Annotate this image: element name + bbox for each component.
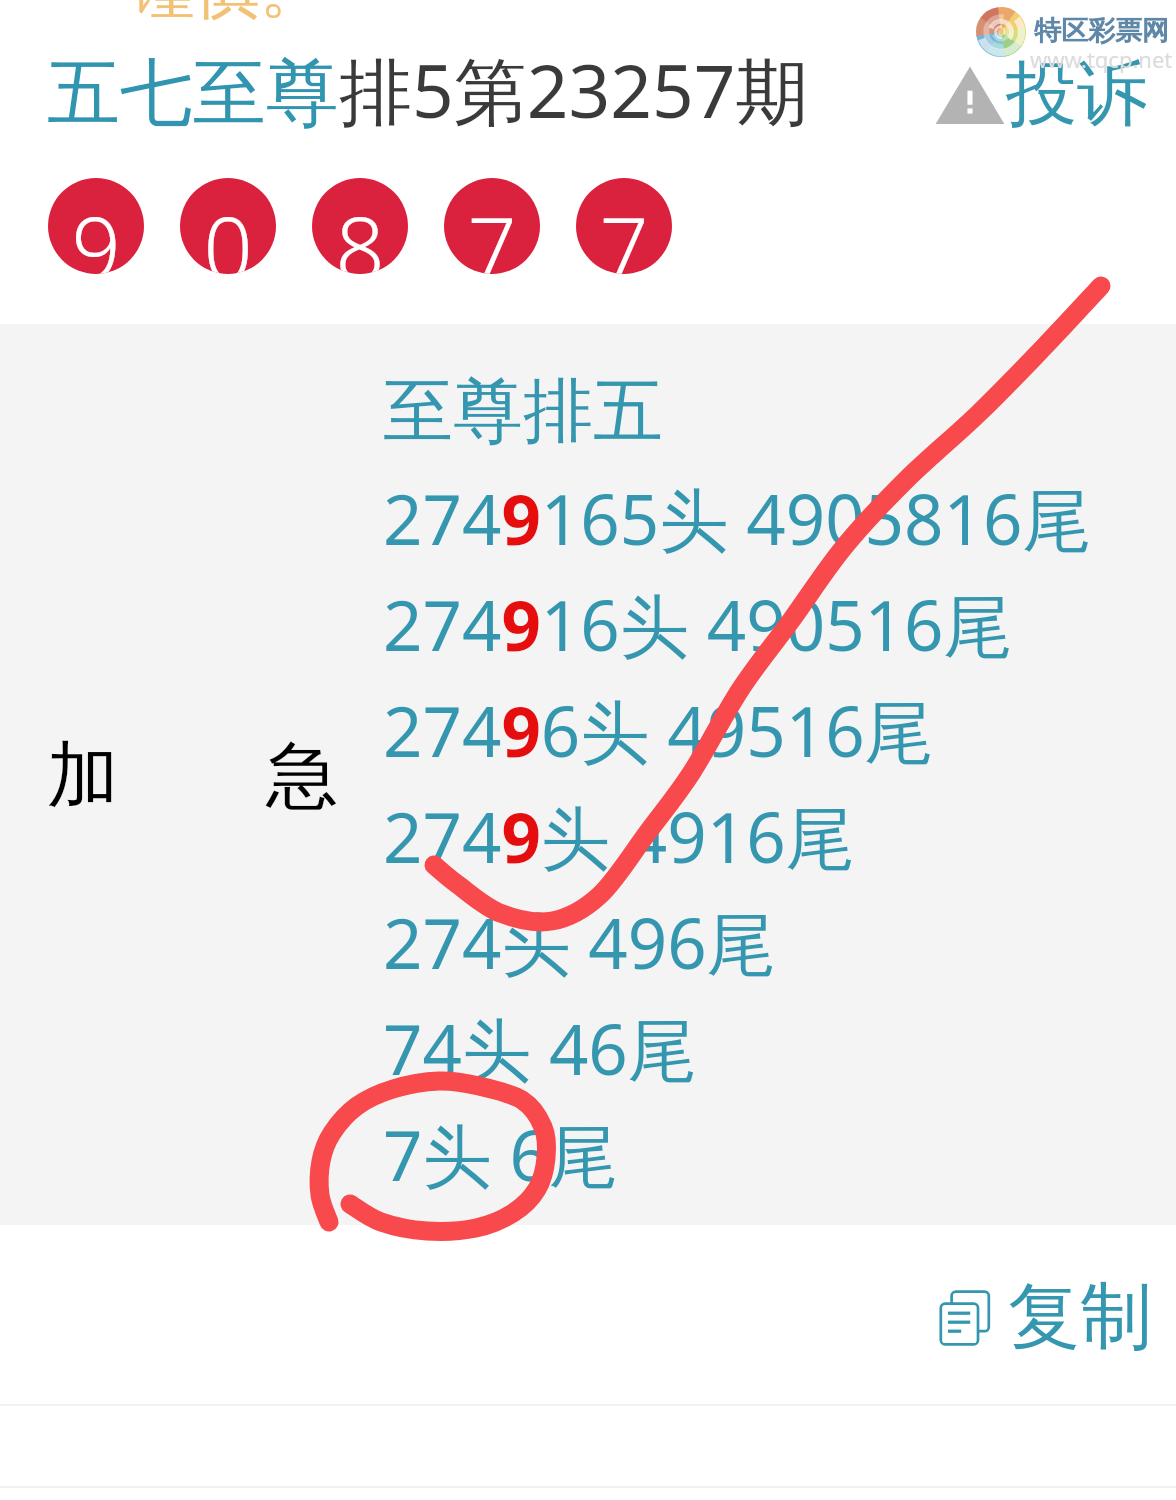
staticText: 9: [48, 188, 144, 274]
button[interactable]: 9: [48, 178, 144, 274]
staticText: 谨慎。: [132, 0, 324, 30]
other: Report a problem: [940, 72, 1000, 124]
button[interactable]: Copy: [934, 1272, 1154, 1363]
staticText: 特区彩票网: [1034, 14, 1169, 48]
staticText: 0: [180, 188, 276, 274]
staticText: 274头 496尾: [383, 895, 776, 989]
staticText: 74头 46尾: [383, 1001, 697, 1095]
staticText: 急: [266, 731, 338, 822]
staticText: 7: [576, 188, 672, 274]
staticText: 274916头 490516尾: [383, 577, 1013, 671]
staticText: 加: [47, 731, 119, 822]
staticText: 2749165头 4905816尾: [383, 471, 1092, 565]
button[interactable]: 7: [576, 178, 672, 274]
staticText: 至尊排五: [383, 368, 663, 456]
staticText: 8: [312, 188, 408, 274]
other: Copy: [936, 1288, 996, 1348]
button[interactable]: Report a problem: [938, 53, 1150, 142]
staticText: 五七至尊排5第23257期: [47, 40, 809, 140]
staticText: 7: [444, 188, 540, 274]
staticText: 2749头 4916尾: [383, 789, 855, 883]
button[interactable]: 0: [180, 178, 276, 274]
staticText: 投诉: [1006, 50, 1148, 139]
button[interactable]: 8: [312, 178, 408, 274]
button[interactable]: 7: [444, 178, 540, 274]
staticText: www.tqcp.net: [1030, 44, 1173, 74]
staticText: 27496头 49516尾: [383, 683, 934, 777]
staticText: 7头 6尾: [383, 1107, 618, 1201]
staticText: 复制: [1008, 1272, 1152, 1363]
